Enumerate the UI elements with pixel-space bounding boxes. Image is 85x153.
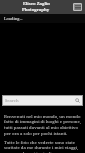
staticText: Loading...: [4, 16, 23, 21]
button[interactable]: Menu: [73, 3, 82, 11]
staticText: Photography: [22, 7, 50, 13]
button[interactable]: Search: [2, 95, 83, 106]
other: Search: [75, 98, 80, 103]
staticText: Benvenuti nel mio mondo, un mondo fatto …: [4, 113, 81, 137]
staticText: Tutte le foto che vedrete sono state sca…: [4, 139, 81, 153]
button[interactable]: Eliseo Zaglio: [22, 1, 50, 13]
staticText: Search: [5, 98, 19, 104]
staticText: Eliseo Zaglio: [23, 1, 50, 7]
